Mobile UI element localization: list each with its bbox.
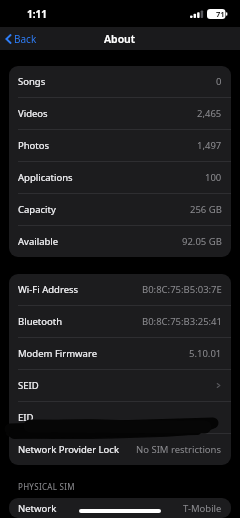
staticText: Wi-Fi Address [18, 283, 79, 296]
staticText: T-Mobile [183, 502, 222, 515]
staticText: Photos [18, 139, 50, 152]
staticText: 1:11 [27, 7, 47, 21]
button[interactable]: Capacity [9, 194, 231, 225]
button[interactable]: Available [9, 226, 231, 257]
staticText: B0:8C:75:B3:25:41 [142, 315, 222, 328]
staticText: B0:8C:75:B5:03:7E [142, 283, 222, 296]
button[interactable]: Network [9, 498, 231, 518]
staticText: 71 [216, 9, 225, 19]
button[interactable]: Videos [9, 98, 231, 129]
staticText: About [104, 32, 136, 46]
staticText: Network [18, 502, 57, 515]
staticText: 256 GB [190, 203, 222, 216]
staticText: PHYSICAL SIM [18, 481, 75, 492]
button[interactable]: Modem Firmware [9, 338, 231, 369]
staticText: 1,497 [197, 139, 222, 152]
button[interactable]: Network Provider Lock [9, 434, 231, 465]
staticText: 100 [205, 171, 222, 184]
staticText: 2,465 [197, 107, 222, 120]
staticText: Videos [18, 107, 48, 120]
button[interactable]: EID [9, 402, 231, 433]
staticText: Applications [18, 171, 73, 184]
button[interactable]: Songs [9, 66, 231, 97]
staticText: 5.10.01 [189, 347, 222, 360]
button[interactable]: Photos [9, 130, 231, 161]
staticText: SEID [18, 379, 39, 392]
staticText: Available [18, 235, 59, 248]
staticText: Back [14, 32, 37, 46]
staticText: 92.05 GB [182, 235, 222, 248]
staticText: No SIM restrictions [136, 443, 222, 456]
button[interactable]: Back [0, 27, 43, 50]
staticText: Bluetooth [18, 315, 63, 328]
button[interactable]: Applications [9, 162, 231, 193]
staticText: Songs [18, 75, 46, 88]
staticText: Modem Firmware [18, 347, 97, 360]
staticText: Capacity [18, 203, 56, 216]
button[interactable]: SEID [9, 370, 231, 401]
staticText: EID [18, 411, 34, 424]
staticText: Network Provider Lock [18, 443, 119, 456]
button[interactable]: Wi-Fi Address [9, 274, 231, 305]
button[interactable]: Bluetooth [9, 306, 231, 337]
staticText: 0 [216, 75, 222, 88]
